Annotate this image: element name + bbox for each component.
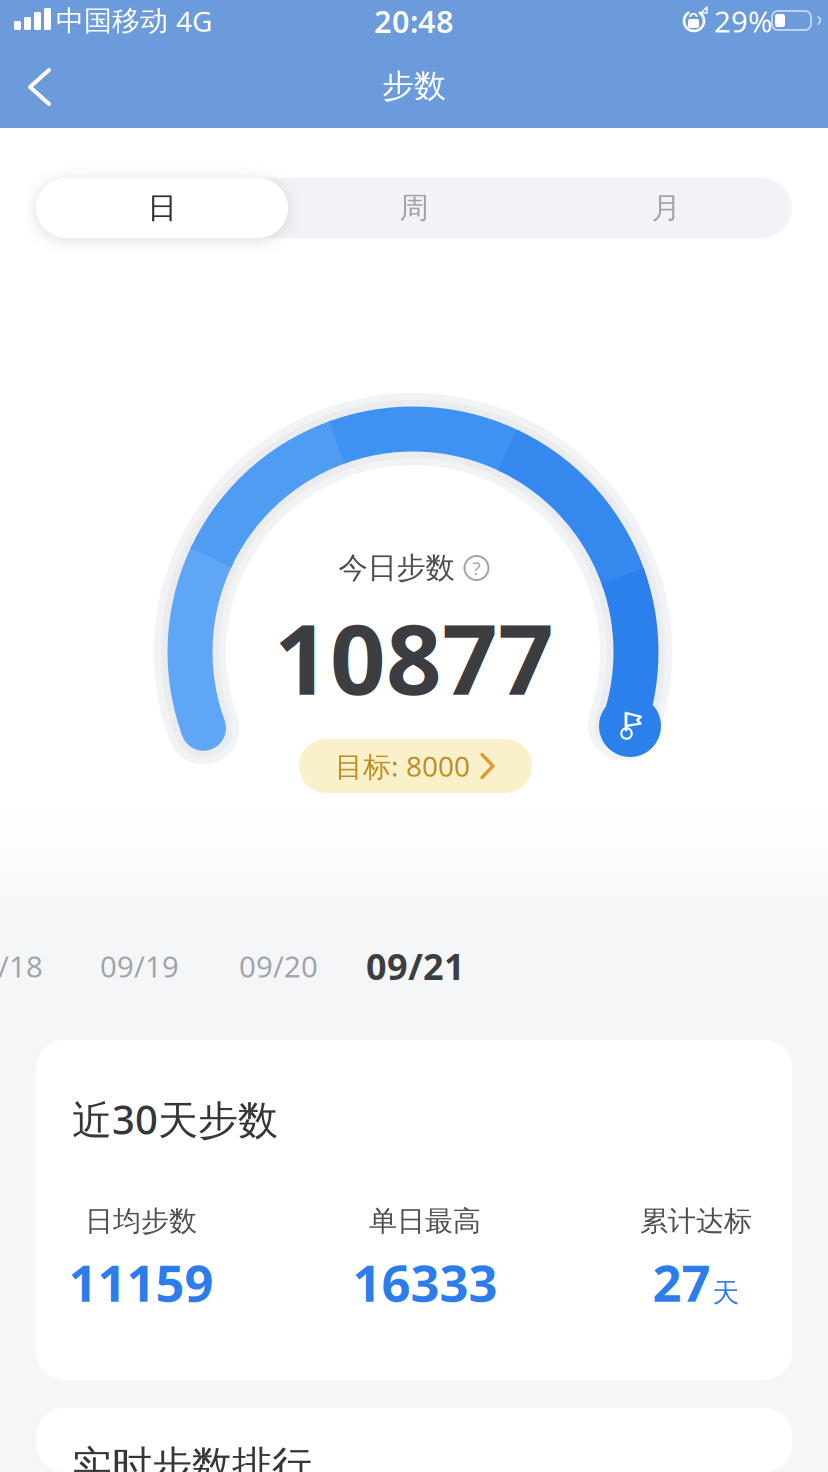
button[interactable]: 月 (540, 178, 792, 238)
staticText: 29% (714, 1, 772, 40)
button[interactable]: 09/19 (100, 948, 179, 984)
staticText: 27 (652, 1248, 710, 1316)
staticText: 20:48 (374, 1, 454, 41)
staticText: 09/21 (366, 942, 465, 990)
staticText: 日 (147, 190, 176, 226)
button[interactable]: 目标: 8000 (299, 739, 532, 793)
button[interactable]: 日 (36, 178, 288, 238)
staticText: 16333 (352, 1248, 497, 1316)
staticText: 11159 (68, 1248, 213, 1316)
button[interactable]: 步数说明 (463, 555, 489, 581)
staticText: 09/19 (100, 946, 179, 985)
staticText: 中国移动 (56, 4, 168, 38)
staticText: 目标: 8000 (335, 747, 470, 785)
staticText: 实时步数排行 (72, 1441, 312, 1472)
staticText: 单日最高 (369, 1204, 481, 1238)
staticText: 天 (712, 1276, 739, 1309)
staticText: /18 (0, 946, 43, 985)
staticText: 10877 (274, 592, 554, 722)
staticText: 累计达标 (640, 1204, 752, 1238)
staticText: 周 (399, 190, 428, 226)
button[interactable]: Back (0, 46, 90, 128)
staticText: 步数 (382, 66, 446, 106)
staticText: 09/20 (239, 946, 318, 985)
staticText: 近30天步数 (72, 1092, 278, 1145)
staticText: 4G (176, 2, 212, 40)
button[interactable]: 09/20 (239, 948, 318, 984)
staticText: 月 (651, 190, 680, 226)
button[interactable]: 09/21 (366, 946, 465, 986)
button[interactable]: /18 (0, 948, 43, 984)
staticText: 日均步数 (85, 1204, 197, 1238)
button[interactable]: 周 (288, 178, 540, 238)
staticText: 今日步数 (338, 550, 454, 586)
staticText: ? (472, 556, 480, 580)
